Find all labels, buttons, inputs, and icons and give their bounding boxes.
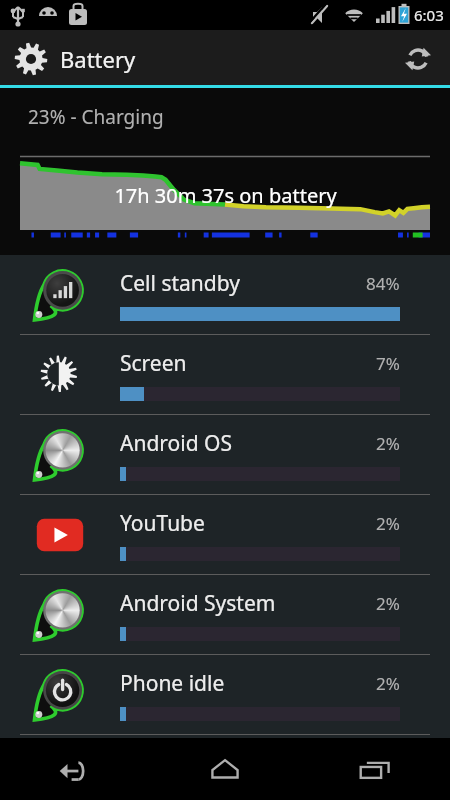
staticText: 17h 30m 37s on battery: [114, 182, 337, 209]
staticText: 2%: [376, 672, 400, 695]
staticText: 2%: [376, 432, 400, 455]
button[interactable]: Recent apps: [300, 738, 450, 800]
button[interactable]: Phone idle: [0, 655, 450, 734]
staticText: Android OS: [120, 429, 376, 458]
button[interactable]: Home: [150, 738, 300, 800]
button[interactable]: Android OS: [0, 415, 450, 494]
staticText: Phone idle: [120, 669, 376, 698]
staticText: 23% - Charging: [28, 104, 164, 130]
staticText: YouTube: [120, 509, 376, 538]
staticText: 7%: [376, 352, 400, 375]
staticText: 2%: [376, 592, 400, 615]
button[interactable]: Refresh: [394, 35, 442, 83]
staticText: Android System: [120, 589, 376, 618]
staticText: Battery: [60, 44, 136, 74]
button[interactable]: Cell standby: [0, 255, 450, 334]
button[interactable]: Back: [0, 738, 150, 800]
staticText: 2%: [376, 512, 400, 535]
staticText: Cell standby: [120, 269, 366, 298]
button[interactable]: Android System: [0, 575, 450, 654]
button[interactable]: Screen: [0, 335, 450, 414]
staticText: 84%: [366, 272, 400, 295]
staticText: 6:03: [414, 5, 444, 25]
button[interactable]: YouTube: [0, 495, 450, 574]
staticText: Screen: [120, 349, 376, 378]
